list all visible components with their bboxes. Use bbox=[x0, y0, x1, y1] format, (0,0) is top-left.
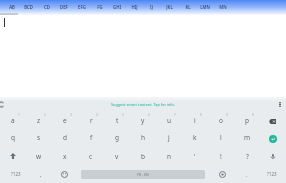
button[interactable]: n bbox=[156, 148, 182, 164]
button[interactable]: j bbox=[156, 129, 182, 145]
button[interactable]: w bbox=[26, 148, 52, 164]
staticText: m bbox=[244, 133, 251, 142]
button[interactable]: GHI bbox=[110, 3, 123, 10]
staticText: Suggest smart content. Tap for info. bbox=[111, 102, 175, 107]
button[interactable]: b bbox=[130, 148, 156, 164]
staticText: KL bbox=[185, 4, 191, 10]
button[interactable]: ?123 bbox=[258, 165, 286, 183]
button[interactable]: , bbox=[32, 165, 50, 183]
button[interactable]: i bbox=[182, 112, 208, 128]
button[interactable]: r bbox=[78, 112, 104, 128]
staticText: ? bbox=[246, 152, 249, 161]
staticText: a bbox=[11, 116, 15, 125]
button[interactable]: l bbox=[208, 129, 234, 145]
button[interactable]: ? bbox=[234, 148, 260, 164]
staticText: , bbox=[40, 171, 42, 178]
button[interactable]: x bbox=[52, 148, 78, 164]
button[interactable]: ! bbox=[208, 148, 234, 164]
button[interactable]: AB bbox=[5, 3, 18, 10]
button[interactable]: p bbox=[234, 112, 260, 128]
button[interactable]: Google bbox=[0, 100, 7, 109]
staticText: ?123 bbox=[267, 171, 277, 177]
staticText: p bbox=[245, 116, 249, 125]
button[interactable]: FG bbox=[93, 3, 106, 10]
staticText: BCD bbox=[24, 4, 33, 10]
staticText: 7 bbox=[174, 113, 176, 117]
button[interactable]: MN bbox=[216, 3, 229, 10]
staticText: IJ bbox=[150, 4, 153, 10]
button[interactable]: a bbox=[0, 112, 26, 128]
staticText: n bbox=[167, 152, 172, 161]
staticText: JKL bbox=[166, 4, 173, 10]
button[interactable]: JKL bbox=[163, 3, 176, 10]
button[interactable]: KL bbox=[181, 3, 194, 10]
staticText: e bbox=[63, 116, 67, 125]
staticText: f bbox=[90, 133, 93, 142]
button[interactable]: EFG bbox=[75, 3, 88, 10]
staticText: q bbox=[11, 133, 15, 142]
staticText: . bbox=[246, 171, 248, 178]
button[interactable]: y bbox=[130, 112, 156, 128]
button[interactable]: m bbox=[234, 129, 260, 145]
button[interactable]: s bbox=[26, 129, 52, 145]
button[interactable]: q bbox=[0, 129, 26, 145]
button[interactable]: ' bbox=[182, 148, 208, 164]
button[interactable]: CD bbox=[40, 3, 53, 10]
staticText: s bbox=[37, 133, 41, 142]
staticText: 6 bbox=[148, 113, 150, 117]
button[interactable]: Voice input bbox=[260, 148, 286, 164]
staticText: AB bbox=[9, 4, 15, 10]
staticText: 5 bbox=[122, 113, 124, 117]
button[interactable]: k bbox=[182, 129, 208, 145]
staticText: DEF bbox=[60, 4, 68, 10]
staticText: HIJ bbox=[131, 4, 138, 10]
button[interactable]: c bbox=[78, 148, 104, 164]
button[interactable]: Enter bbox=[260, 131, 286, 147]
staticText: x bbox=[63, 152, 67, 161]
staticText: 8 bbox=[200, 113, 202, 117]
staticText: k bbox=[193, 133, 197, 142]
staticText: o bbox=[219, 116, 223, 125]
button[interactable]: BCD bbox=[22, 3, 35, 10]
staticText: ?123 bbox=[11, 171, 21, 177]
button[interactable]: HIJ bbox=[128, 3, 141, 10]
button[interactable]: Backspace bbox=[260, 113, 286, 129]
button[interactable]: f bbox=[78, 129, 104, 145]
staticText: ! bbox=[220, 152, 222, 161]
button[interactable]: u bbox=[156, 112, 182, 128]
button[interactable]: z bbox=[26, 112, 52, 128]
button[interactable]: e bbox=[52, 112, 78, 128]
staticText: c bbox=[89, 152, 93, 161]
button[interactable]: Suggest smart content. Tap for info. bbox=[103, 100, 183, 109]
staticText: l bbox=[220, 133, 222, 142]
staticText: FR - EN bbox=[137, 172, 149, 177]
button[interactable]: Shift bbox=[0, 148, 26, 164]
staticText: z bbox=[37, 116, 41, 125]
button[interactable]: More suggestions bbox=[275, 100, 284, 109]
staticText: LMN bbox=[200, 4, 210, 10]
button[interactable]: FR - EN bbox=[81, 170, 205, 179]
button[interactable]: g bbox=[104, 129, 130, 145]
staticText: CD bbox=[44, 4, 50, 10]
button[interactable]: Emoji bbox=[55, 165, 73, 183]
staticText: 2 bbox=[44, 113, 46, 117]
staticText: MN bbox=[219, 4, 227, 10]
button[interactable]: t bbox=[104, 112, 130, 128]
button[interactable]: IJ bbox=[145, 3, 158, 10]
staticText: g bbox=[115, 133, 119, 142]
button[interactable]: LMN bbox=[198, 3, 211, 10]
staticText: v bbox=[115, 152, 119, 161]
button[interactable]: Settings bbox=[213, 165, 231, 183]
button[interactable]: DEF bbox=[57, 3, 70, 10]
staticText: w bbox=[36, 152, 42, 161]
button[interactable]: h bbox=[130, 129, 156, 145]
staticText: EFG bbox=[78, 4, 86, 10]
button[interactable]: v bbox=[104, 148, 130, 164]
staticText: b bbox=[141, 152, 145, 161]
button[interactable]: o bbox=[208, 112, 234, 128]
button[interactable]: ?123 bbox=[2, 165, 30, 183]
staticText: r bbox=[90, 116, 93, 125]
staticText: 4 bbox=[96, 113, 98, 117]
button[interactable]: d bbox=[52, 129, 78, 145]
